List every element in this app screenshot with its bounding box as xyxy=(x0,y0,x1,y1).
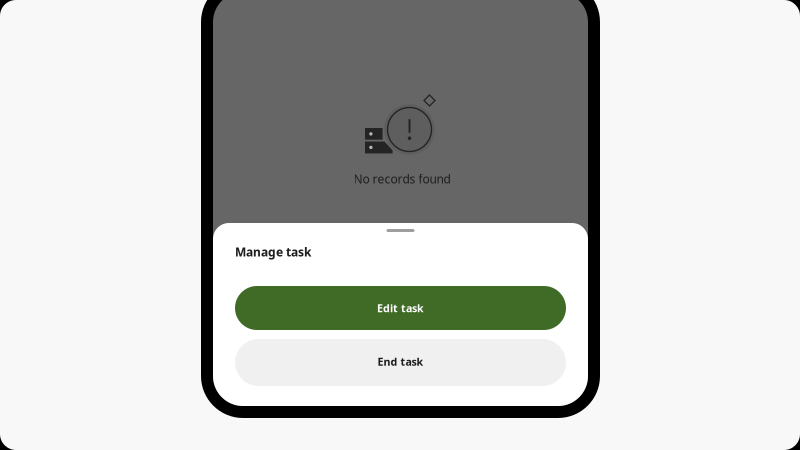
staticText: Edit task xyxy=(377,301,424,315)
staticText: End task xyxy=(377,354,423,369)
staticText: No records found xyxy=(353,171,450,187)
button[interactable]: Edit task xyxy=(235,286,566,330)
staticText: Manage task xyxy=(235,244,311,260)
button[interactable]: End task xyxy=(235,339,566,386)
